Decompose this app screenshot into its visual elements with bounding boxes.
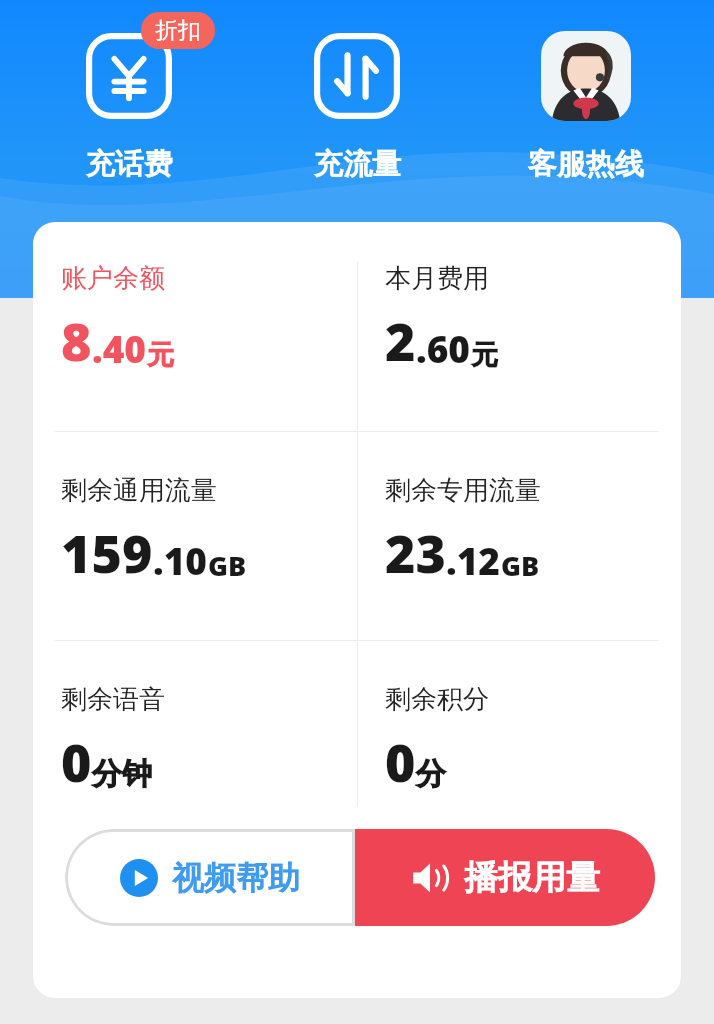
staticText: 23 bbox=[385, 517, 446, 588]
button[interactable]: 客服热线 bbox=[486, 0, 686, 183]
staticText: .60 bbox=[416, 323, 471, 373]
button[interactable]: 充流量 bbox=[257, 0, 457, 183]
staticText: 剩余语音 bbox=[61, 683, 165, 716]
staticText: 剩余专用流量 bbox=[385, 474, 541, 507]
staticText: 客服热线 bbox=[528, 146, 644, 183]
staticText: 分钟 bbox=[92, 755, 152, 793]
staticText: 账户余额 bbox=[61, 262, 165, 295]
staticText: 分 bbox=[416, 755, 446, 793]
staticText: 0 bbox=[385, 726, 416, 797]
other: 客服热线 bbox=[541, 31, 631, 121]
button[interactable]: 充话费 bbox=[29, 0, 229, 183]
staticText: 折扣 bbox=[155, 16, 201, 45]
staticText: GB bbox=[208, 547, 247, 584]
button[interactable]: 播报用量 bbox=[355, 829, 655, 926]
staticText: 元 bbox=[471, 338, 498, 372]
other: 充话费 bbox=[86, 33, 172, 119]
staticText: .40 bbox=[92, 323, 147, 373]
staticText: GB bbox=[501, 547, 540, 584]
staticText: 8 bbox=[61, 305, 92, 376]
staticText: 充流量 bbox=[314, 146, 401, 183]
staticText: 视频帮助 bbox=[172, 858, 300, 898]
other: 充流量 bbox=[314, 33, 400, 119]
staticText: 剩余积分 bbox=[385, 683, 489, 716]
button[interactable]: 视频帮助 bbox=[65, 829, 355, 926]
staticText: 剩余通用流量 bbox=[61, 474, 217, 507]
staticText: .12 bbox=[446, 535, 501, 585]
staticText: .10 bbox=[153, 535, 208, 585]
staticText: 2 bbox=[385, 305, 416, 376]
staticText: 播报用量 bbox=[464, 856, 600, 899]
staticText: 元 bbox=[147, 338, 174, 372]
staticText: 本月费用 bbox=[385, 262, 489, 295]
staticText: 0 bbox=[61, 726, 92, 797]
staticText: 159 bbox=[61, 517, 153, 588]
staticText: 充话费 bbox=[86, 146, 173, 183]
